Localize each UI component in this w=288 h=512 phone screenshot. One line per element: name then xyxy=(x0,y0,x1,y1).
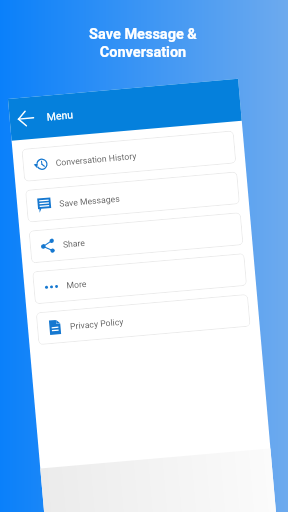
button[interactable]: Privacy Policy xyxy=(36,294,251,345)
button[interactable]: Save Messages xyxy=(25,171,240,223)
button[interactable]: Share xyxy=(28,212,244,263)
staticText: Conversation History xyxy=(55,151,137,168)
staticText: Save Message & Conversation xyxy=(89,26,197,60)
staticText: More xyxy=(66,279,88,291)
staticText: Menu xyxy=(46,108,74,123)
staticText: Share xyxy=(62,238,86,250)
button[interactable]: Back xyxy=(11,103,41,134)
button[interactable]: Conversation History xyxy=(21,130,236,182)
staticText: Privacy Policy xyxy=(70,317,124,331)
button[interactable]: More xyxy=(32,253,247,304)
staticText: Save Messages xyxy=(59,194,120,209)
